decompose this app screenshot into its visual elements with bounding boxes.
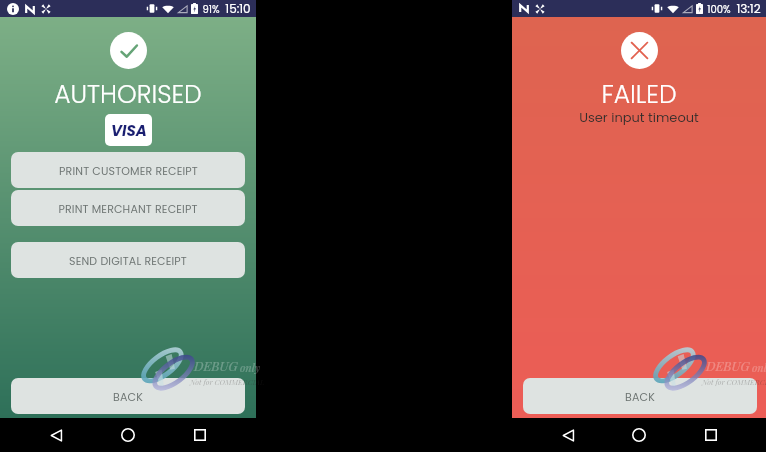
staticText: 91% bbox=[202, 2, 220, 16]
button[interactable]: Recent apps bbox=[695, 419, 727, 451]
button[interactable]: Home bbox=[623, 419, 655, 451]
button[interactable]: PRINT CUSTOMER RECEIPT bbox=[11, 152, 245, 188]
staticText: DEBUG bbox=[194, 357, 238, 374]
button[interactable]: Recent apps bbox=[184, 419, 216, 451]
staticText: 100% bbox=[707, 2, 731, 16]
staticText: PRINT CUSTOMER RECEIPT bbox=[59, 163, 198, 178]
button[interactable]: PRINT MERCHANT RECEIPT bbox=[11, 190, 245, 226]
staticText: SEND DIGITAL RECEIPT bbox=[69, 253, 187, 268]
staticText: only bbox=[240, 360, 261, 375]
button[interactable]: Back bbox=[552, 419, 584, 451]
staticText: User input timeout bbox=[579, 108, 699, 126]
staticText: Not for COMMERCIAL bbox=[190, 377, 265, 387]
staticText: 13:12 bbox=[736, 0, 761, 17]
staticText: BACK bbox=[625, 389, 655, 404]
button[interactable]: BACK bbox=[11, 378, 245, 414]
staticText: FAILED bbox=[601, 77, 677, 112]
button[interactable]: Back bbox=[40, 419, 72, 451]
staticText: AUTHORISED bbox=[54, 77, 202, 112]
staticText: PRINT MERCHANT RECEIPT bbox=[58, 201, 198, 216]
staticText: BACK bbox=[113, 389, 143, 404]
staticText: Not for COMMERCIAL bbox=[702, 377, 766, 387]
staticText: 15:10 bbox=[225, 0, 251, 17]
staticText: VISA bbox=[111, 120, 147, 141]
staticText: only bbox=[752, 360, 766, 375]
button[interactable]: Home bbox=[112, 419, 144, 451]
staticText: DEBUG bbox=[706, 357, 750, 374]
button[interactable]: SEND DIGITAL RECEIPT bbox=[11, 242, 245, 278]
button[interactable]: BACK bbox=[523, 378, 757, 414]
